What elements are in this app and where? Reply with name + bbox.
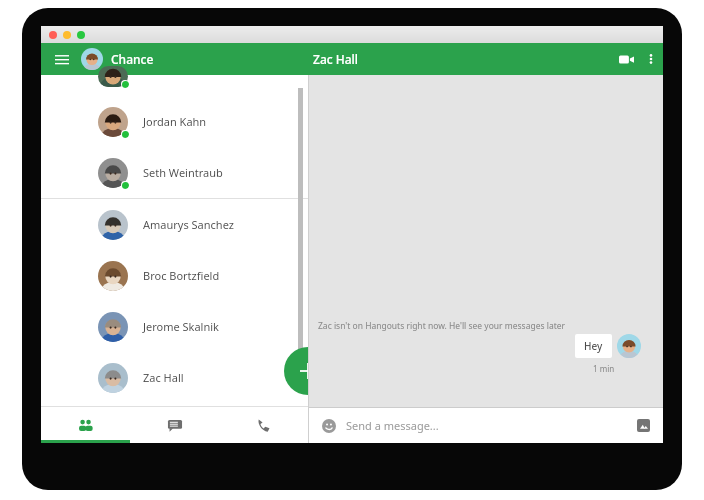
staticText: Amaurys Sanchez: [143, 217, 234, 232]
staticText: Seth Weintraub: [143, 165, 223, 180]
staticText: Hey: [584, 339, 603, 353]
button[interactable]: New conversation: [284, 347, 332, 395]
button[interactable]: More options: [639, 47, 663, 71]
staticText: Zac isn't on Hangouts right now. He'll s…: [318, 320, 566, 332]
button[interactable]: Emoji: [309, 408, 663, 443]
button[interactable]: [63, 31, 71, 39]
staticText: Broc Bortzfield: [143, 268, 220, 283]
button[interactable]: Tab: [219, 407, 308, 443]
button[interactable]: Insert image: [637, 419, 650, 432]
button[interactable]: [77, 31, 85, 39]
button[interactable]: [49, 31, 57, 39]
button[interactable]: Jordan Kahn: [41, 96, 308, 147]
staticText: Jerome Skalnik: [143, 319, 219, 334]
button[interactable]: Seth Weintraub: [41, 147, 308, 198]
button[interactable]: Jerome Skalnik: [41, 301, 308, 352]
staticText: Zac Hall: [313, 51, 359, 67]
button[interactable]: Tab: [130, 407, 219, 443]
staticText: 1 min: [593, 363, 615, 374]
button[interactable]: Contacts tab: [41, 407, 130, 443]
button[interactable]: Emoji: [322, 419, 336, 433]
staticText: Zac Hall: [143, 370, 184, 385]
staticText: Chance: [111, 51, 154, 67]
button[interactable]: Broc Bortzfield: [41, 250, 308, 301]
button[interactable]: Video call: [613, 46, 639, 72]
button[interactable]: Hey: [575, 334, 612, 358]
staticText: Jordan Kahn: [143, 114, 207, 129]
button[interactable]: Menu: [51, 48, 73, 70]
button[interactable]: Amaurys Sanchez: [41, 199, 308, 250]
staticText: Send a message...: [346, 418, 439, 433]
button[interactable]: Zac Hall: [41, 352, 308, 403]
